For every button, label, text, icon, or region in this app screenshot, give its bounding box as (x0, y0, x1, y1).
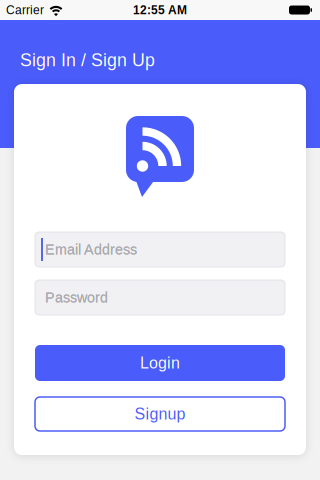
staticText: Password (45, 289, 108, 305)
staticText: Signup (134, 405, 185, 423)
staticText: Sign In / Sign Up (20, 50, 155, 70)
textField[interactable]: Password (45, 289, 165, 305)
staticText: Carrier (6, 3, 44, 17)
staticText: 12:55 AM (133, 3, 187, 17)
button[interactable]: Signup (35, 397, 285, 431)
button[interactable]: Login (35, 345, 285, 381)
staticText: Login (140, 354, 180, 372)
staticText: Email Address (45, 241, 137, 257)
staticText: Password (45, 289, 108, 305)
textField[interactable]: Email Address (45, 241, 165, 257)
staticText: Email Address (45, 241, 137, 257)
